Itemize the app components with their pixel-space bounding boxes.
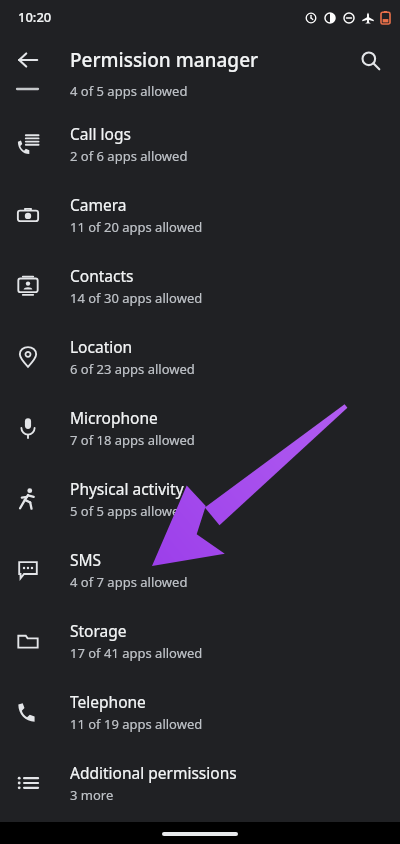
button[interactable]: Contacts	[0, 250, 400, 321]
staticText: Permission manager	[70, 47, 259, 73]
staticText: 2 of 6 apps allowed	[70, 147, 188, 165]
button[interactable]: Location	[0, 321, 400, 392]
staticText: 4 of 5 apps allowed	[70, 82, 188, 100]
staticText: 17 of 41 apps allowed	[70, 644, 203, 662]
staticText: Camera	[70, 194, 127, 215]
staticText: SMS	[70, 549, 102, 570]
button[interactable]: Back	[8, 40, 48, 80]
button[interactable]: SMS	[0, 534, 400, 605]
staticText: Microphone	[70, 407, 158, 428]
button[interactable]: Search	[350, 40, 390, 80]
staticText: Location	[70, 336, 133, 357]
staticText: 7 of 18 apps allowed	[70, 431, 195, 449]
staticText: 5 of 5 apps allowed	[70, 502, 188, 520]
staticText: Call logs	[70, 123, 131, 144]
staticText: 10:20	[18, 8, 52, 26]
staticText: Contacts	[70, 265, 134, 286]
button[interactable]: Microphone	[0, 392, 400, 463]
button[interactable]: Camera	[0, 179, 400, 250]
staticText: Telephone	[70, 691, 146, 712]
button[interactable]: Physical activity	[0, 463, 400, 534]
staticText: Storage	[70, 620, 127, 641]
button[interactable]: Additional permissions	[0, 747, 400, 818]
button[interactable]: Storage	[0, 605, 400, 676]
staticText: 3 more	[70, 786, 114, 804]
button[interactable]: Telephone	[0, 676, 400, 747]
staticText: 6 of 23 apps allowed	[70, 360, 195, 378]
staticText: Additional permissions	[70, 762, 237, 783]
staticText: 11 of 20 apps allowed	[70, 218, 203, 236]
staticText: 4 of 7 apps allowed	[70, 573, 188, 591]
staticText: Physical activity	[70, 478, 184, 499]
button[interactable]: 4 of 5 apps allowed	[0, 86, 400, 108]
button[interactable]: Call logs	[0, 108, 400, 179]
staticText: 14 of 30 apps allowed	[70, 289, 203, 307]
staticText: 11 of 19 apps allowed	[70, 715, 203, 733]
